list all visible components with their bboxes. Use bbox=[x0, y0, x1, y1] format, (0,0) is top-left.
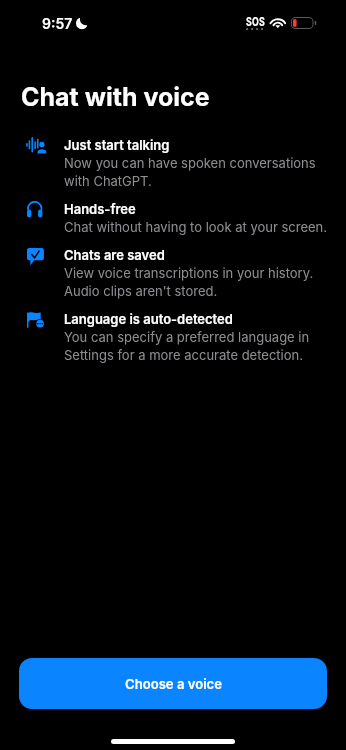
staticText: You can specify a preferred language in … bbox=[64, 328, 336, 364]
staticText: Chat with voice bbox=[21, 82, 210, 112]
staticText: 9:57 bbox=[42, 15, 73, 32]
staticText: Hands-free bbox=[64, 200, 136, 218]
staticText: Just start talking bbox=[64, 136, 170, 154]
staticText: View voice transcriptions in your histor… bbox=[64, 264, 336, 300]
button[interactable]: Choose a voice bbox=[19, 658, 327, 709]
staticText: Choose a voice bbox=[125, 676, 222, 692]
staticText: SOS bbox=[246, 15, 265, 29]
staticText: Now you can have spoken conversations wi… bbox=[64, 154, 336, 190]
staticText: Chat without having to look at your scre… bbox=[64, 218, 328, 236]
staticText: Language is auto-detected bbox=[64, 310, 233, 328]
staticText: Chats are saved bbox=[64, 246, 165, 264]
